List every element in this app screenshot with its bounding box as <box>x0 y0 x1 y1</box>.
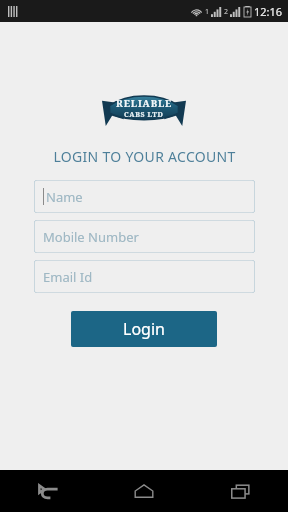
button[interactable]: Email Id <box>34 260 255 293</box>
staticText: Name <box>46 188 83 206</box>
staticText: Email Id <box>43 268 93 286</box>
button[interactable]: Login <box>71 311 217 347</box>
staticText: Login <box>123 318 165 340</box>
staticText: 2 <box>224 7 229 17</box>
staticText: LOGIN TO YOUR ACCOUNT <box>53 147 236 166</box>
button[interactable]: Mobile Number <box>34 220 255 253</box>
staticText: RELIABLE <box>116 97 173 110</box>
button[interactable]: Name <box>34 180 255 213</box>
button[interactable]: Back <box>0 470 96 512</box>
button[interactable]: Home <box>96 470 192 512</box>
staticText: CABS LTD <box>124 110 164 120</box>
staticText: Mobile Number <box>43 228 139 246</box>
staticText: 12:16 <box>254 4 283 19</box>
button[interactable]: Recent apps <box>192 470 288 512</box>
staticText: 1 <box>205 7 210 17</box>
